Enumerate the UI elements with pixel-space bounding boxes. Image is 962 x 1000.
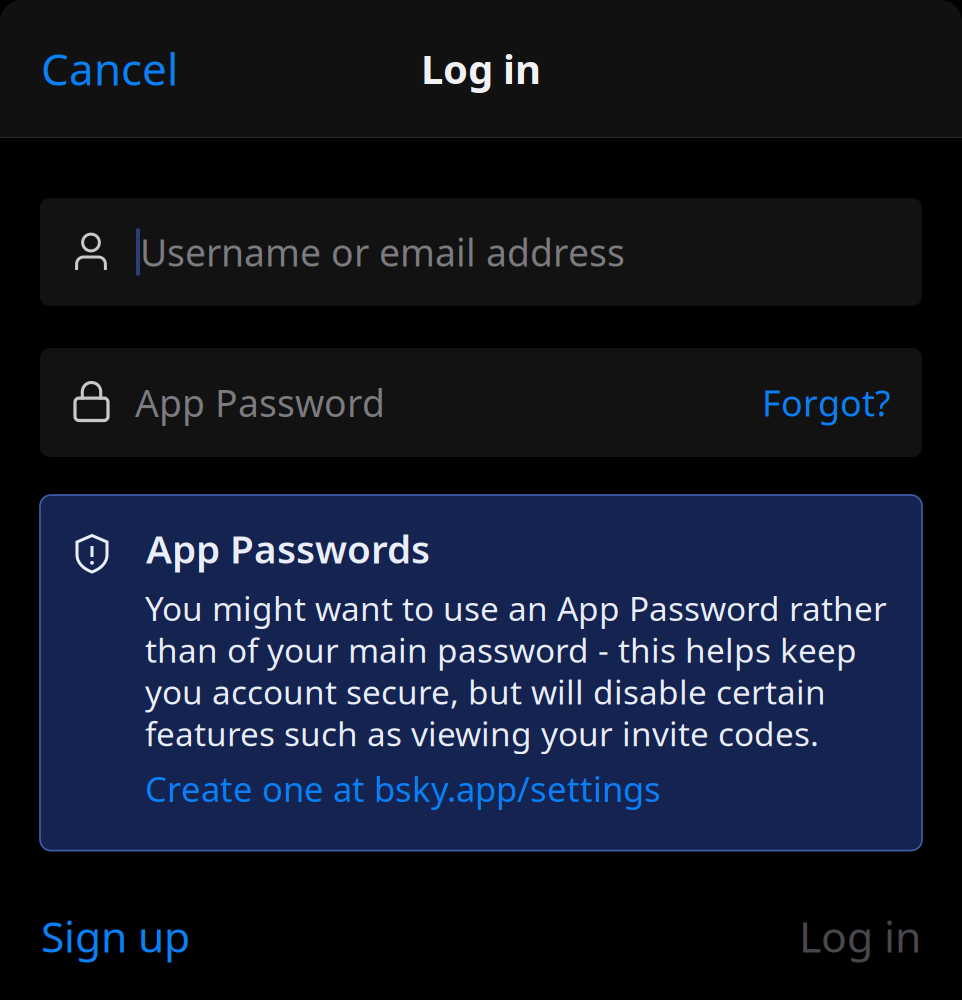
staticText: features such as viewing your invite cod…: [145, 711, 819, 756]
button[interactable]: Forgot?: [738, 357, 922, 448]
staticText: You might want to use an App Password ra…: [145, 586, 887, 630]
staticText: Log in: [799, 908, 921, 964]
button[interactable]: Log in: [769, 886, 962, 986]
staticText: App Password: [135, 378, 385, 427]
staticText: App Passwords: [146, 523, 430, 574]
button[interactable]: Cancel: [0, 25, 208, 112]
staticText: than of your main password - this helps …: [145, 628, 857, 672]
staticText: Log in: [421, 42, 541, 95]
button[interactable]: Create one at bsky.app/settings: [74, 756, 661, 816]
button[interactable]: Sign up: [0, 886, 220, 986]
staticText: Create one at bsky.app/settings: [145, 766, 661, 812]
button[interactable]: App Password: [40, 348, 738, 457]
staticText: Username or email address: [140, 227, 625, 277]
staticText: you account secure, but will disable cer…: [145, 669, 826, 714]
staticText: Cancel: [41, 39, 178, 98]
button[interactable]: Username or email address: [0, 198, 962, 306]
staticText: Forgot?: [762, 379, 891, 426]
staticText: Sign up: [41, 908, 190, 964]
